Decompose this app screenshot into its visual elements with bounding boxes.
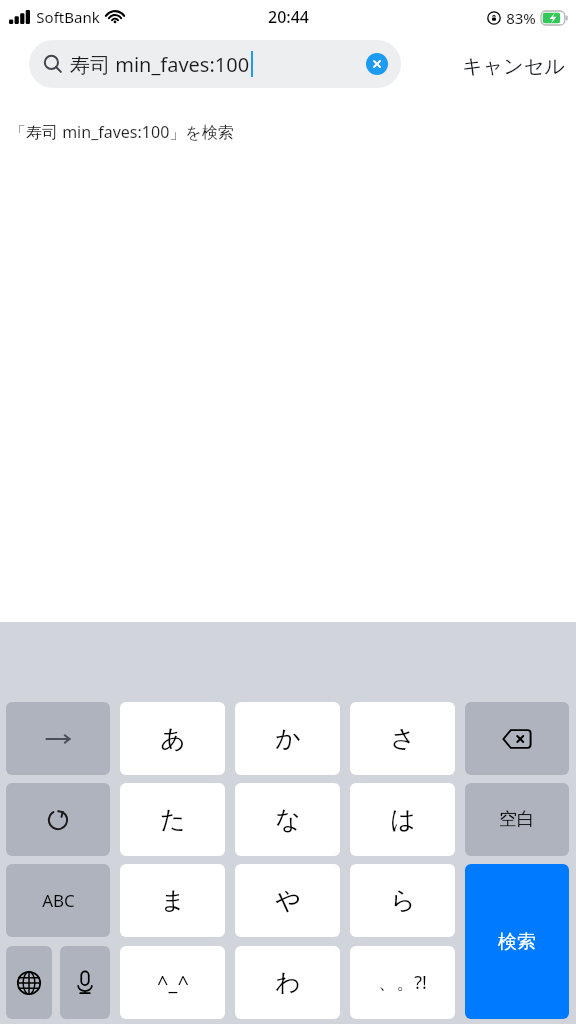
- staticText: は: [390, 804, 416, 835]
- staticText: 空白: [499, 808, 535, 831]
- staticText: や: [275, 885, 301, 916]
- staticText: わ: [275, 967, 301, 998]
- button[interactable]: 空白: [465, 783, 569, 856]
- staticText: ABC: [42, 889, 75, 912]
- staticText: 「寿司 min_faves:100」を検索: [10, 121, 234, 143]
- button[interactable]: ま: [120, 864, 225, 937]
- button[interactable]: Clear text: [366, 53, 388, 75]
- staticText: あ: [160, 723, 186, 754]
- button[interactable]: さ: [350, 702, 455, 775]
- button[interactable]: キャンセル: [462, 54, 565, 79]
- button[interactable]: ら: [350, 864, 455, 937]
- button[interactable]: Next candidate: [6, 702, 110, 775]
- button[interactable]: あ: [120, 702, 225, 775]
- button[interactable]: 寿司 min_faves:100: [29, 40, 401, 88]
- button[interactable]: Undo: [6, 783, 110, 856]
- button[interactable]: Switch keyboard: [6, 946, 52, 1019]
- button[interactable]: か: [235, 702, 340, 775]
- button[interactable]: Delete: [465, 702, 569, 775]
- staticText: ま: [160, 885, 186, 916]
- staticText: 83%: [506, 8, 536, 28]
- button[interactable]: な: [235, 783, 340, 856]
- button[interactable]: わ: [235, 946, 340, 1019]
- staticText: 検索: [498, 930, 536, 954]
- staticText: SoftBank: [36, 7, 100, 27]
- button[interactable]: た: [120, 783, 225, 856]
- staticText: な: [275, 804, 301, 835]
- staticText: さ: [390, 723, 416, 754]
- button[interactable]: や: [235, 864, 340, 937]
- staticText: 20:44: [268, 6, 309, 28]
- staticText: ら: [390, 885, 416, 916]
- button[interactable]: 、。?!: [350, 946, 455, 1019]
- staticText: 、。?!: [378, 970, 427, 995]
- button[interactable]: ABC: [6, 864, 110, 937]
- button[interactable]: 検索: [465, 864, 569, 1019]
- staticText: 寿司 min_faves:100: [70, 51, 250, 78]
- staticText: た: [160, 804, 186, 835]
- staticText: キャンセル: [462, 54, 565, 79]
- staticText: ^_^: [157, 969, 189, 996]
- button[interactable]: ^_^: [120, 946, 225, 1019]
- button[interactable]: Dictation: [60, 946, 110, 1019]
- staticText: か: [275, 723, 301, 754]
- button[interactable]: は: [350, 783, 455, 856]
